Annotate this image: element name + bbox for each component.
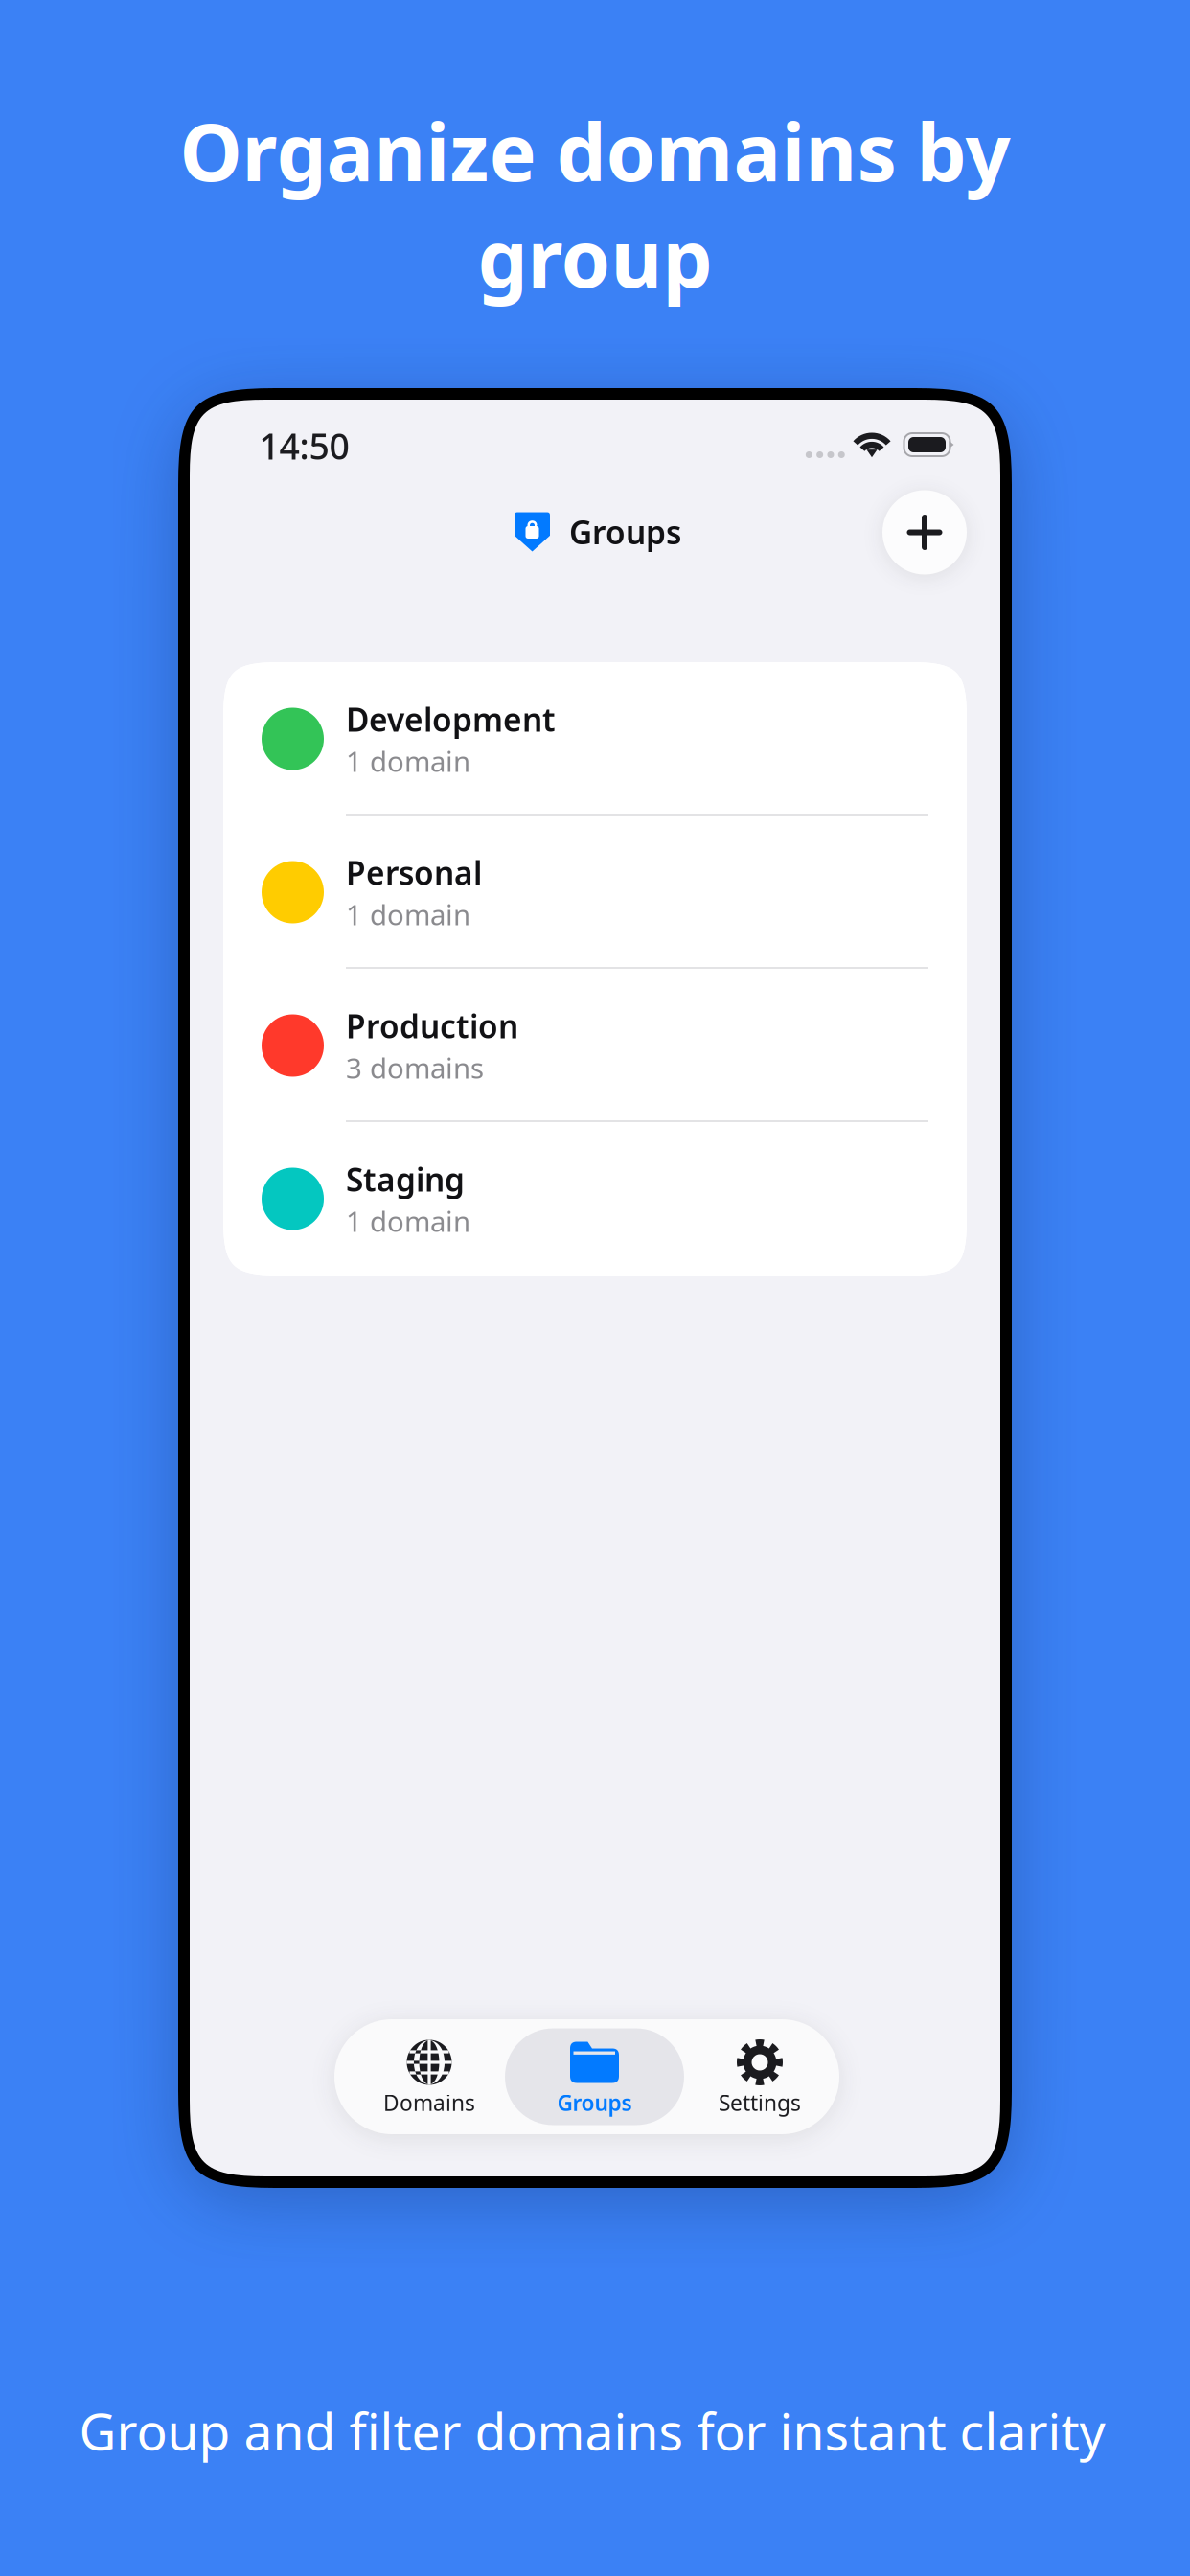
staticText: Groups [569, 511, 681, 553]
staticText: 14:50 [259, 422, 349, 469]
button[interactable]: Settings [670, 2019, 849, 2134]
button[interactable]: Staging [223, 1122, 967, 1276]
staticText: Personal [346, 851, 482, 894]
staticText: 1 domain [346, 896, 470, 933]
staticText: 1 domain [346, 1202, 470, 1240]
staticText: Domains [383, 2088, 475, 2117]
button[interactable]: Add group [882, 490, 967, 575]
staticText: Development [346, 698, 556, 741]
staticText: group [478, 204, 712, 309]
staticText: Groups [557, 2088, 632, 2117]
button[interactable]: Domains [340, 2019, 519, 2134]
staticText: 1 domain [346, 742, 470, 780]
staticText: Staging [346, 1158, 465, 1201]
staticText: Group and filter domains for instant cla… [79, 2396, 1105, 2464]
staticText: 3 domains [346, 1049, 484, 1086]
button[interactable]: Groups [505, 2019, 684, 2134]
staticText: Production [346, 1005, 518, 1047]
staticText: Organize domains by [180, 98, 1010, 203]
button[interactable]: Development [223, 662, 967, 816]
staticText: Settings [719, 2088, 801, 2117]
button[interactable]: Personal [223, 816, 967, 969]
button[interactable]: Production [223, 969, 967, 1122]
